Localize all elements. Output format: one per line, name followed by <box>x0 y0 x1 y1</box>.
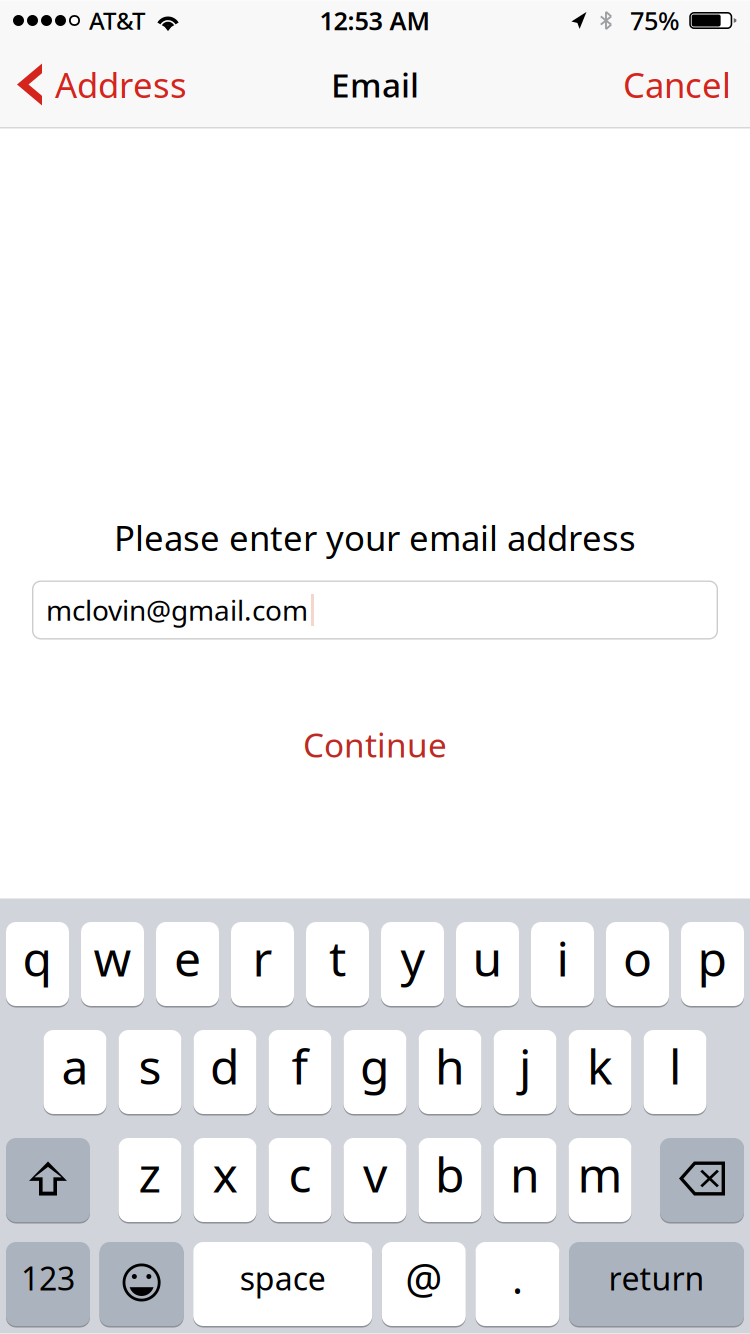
button[interactable]: return <box>569 1240 744 1327</box>
button[interactable]: q <box>6 920 69 1007</box>
staticText: 123 <box>21 1257 75 1299</box>
button[interactable]: w <box>81 920 144 1007</box>
staticText: space <box>240 1257 326 1299</box>
staticText: f <box>291 1034 308 1098</box>
staticText: o <box>623 926 652 990</box>
staticText: a <box>61 1034 88 1098</box>
staticText: q <box>22 926 52 990</box>
button[interactable]: m <box>568 1136 631 1223</box>
button[interactable]: j <box>493 1028 556 1115</box>
staticText: Please enter your email address <box>114 514 636 560</box>
button[interactable]: Delete <box>660 1136 744 1223</box>
button[interactable]: f <box>268 1028 331 1115</box>
button[interactable]: p <box>681 920 744 1007</box>
staticText: z <box>138 1142 161 1206</box>
staticText: mclovin@gmail.com <box>46 591 308 629</box>
button[interactable]: b <box>418 1136 481 1223</box>
button[interactable]: a <box>43 1028 106 1115</box>
button[interactable]: t <box>306 920 369 1007</box>
button[interactable]: 123 <box>6 1240 90 1327</box>
button[interactable]: c <box>268 1136 331 1223</box>
staticText: return <box>608 1257 704 1299</box>
button[interactable]: x <box>193 1136 256 1223</box>
staticText: t <box>329 926 346 990</box>
staticText: Address <box>55 61 187 107</box>
staticText: . <box>512 1251 523 1305</box>
staticText: h <box>435 1034 465 1098</box>
staticText: r <box>252 926 272 990</box>
staticText: v <box>363 1142 387 1206</box>
button[interactable]: s <box>118 1028 181 1115</box>
staticText: i <box>556 926 568 990</box>
button[interactable]: h <box>418 1028 481 1115</box>
button[interactable]: l <box>643 1028 706 1115</box>
staticText: b <box>435 1142 465 1206</box>
staticText: y <box>400 926 424 990</box>
staticText: e <box>174 926 201 990</box>
button[interactable]: Emoji keyboard <box>100 1240 184 1327</box>
button[interactable]: e <box>156 920 219 1007</box>
staticText: l <box>669 1034 681 1098</box>
staticText: x <box>212 1142 237 1206</box>
staticText: m <box>577 1142 622 1206</box>
staticText: Email <box>331 62 419 107</box>
button[interactable]: u <box>456 920 519 1007</box>
staticText: 12:53 AM <box>319 4 430 37</box>
staticText: p <box>697 926 727 990</box>
staticText: n <box>510 1142 540 1206</box>
staticText: w <box>93 926 131 990</box>
staticText: Continue <box>303 722 447 767</box>
button[interactable]: z <box>118 1136 181 1223</box>
button[interactable]: Shift <box>6 1136 90 1223</box>
button[interactable]: Continue <box>0 714 750 774</box>
button[interactable]: space <box>193 1240 372 1327</box>
staticText: @ <box>405 1251 442 1305</box>
staticText: g <box>360 1034 390 1098</box>
button[interactable]: k <box>568 1028 631 1115</box>
button[interactable]: . <box>475 1240 559 1327</box>
staticText: c <box>288 1142 311 1206</box>
staticText: d <box>210 1034 240 1098</box>
staticText: j <box>519 1034 531 1098</box>
button[interactable]: v <box>343 1136 406 1223</box>
button[interactable]: y <box>381 920 444 1007</box>
button[interactable]: o <box>606 920 669 1007</box>
staticText: u <box>472 926 502 990</box>
staticText: 75% <box>630 4 680 37</box>
staticText: Cancel <box>623 61 731 107</box>
button[interactable]: n <box>493 1136 556 1223</box>
button[interactable]: d <box>193 1028 256 1115</box>
staticText: s <box>138 1034 161 1098</box>
button[interactable]: Cancel <box>609 40 750 128</box>
button[interactable]: Address <box>0 40 201 128</box>
button[interactable]: i <box>531 920 594 1007</box>
staticText: AT&T <box>89 5 145 36</box>
button[interactable]: r <box>231 920 294 1007</box>
staticText: k <box>587 1034 613 1098</box>
button[interactable]: g <box>343 1028 406 1115</box>
button[interactable]: @ <box>382 1240 466 1327</box>
